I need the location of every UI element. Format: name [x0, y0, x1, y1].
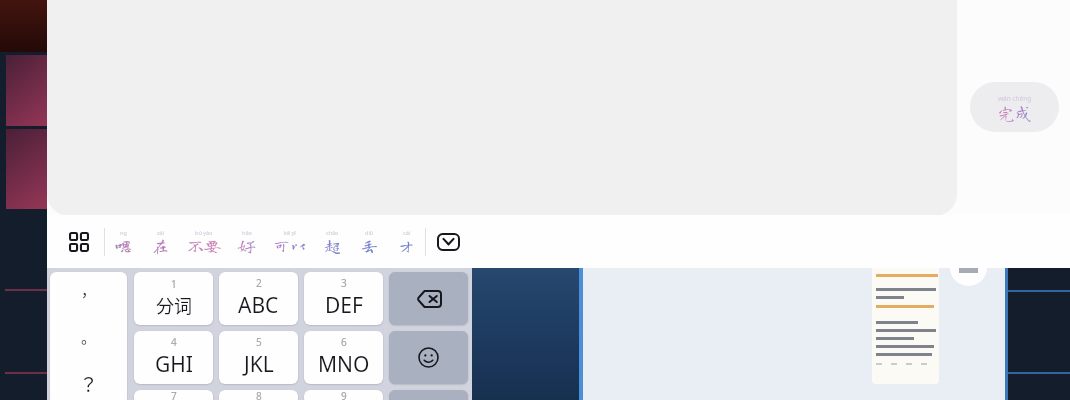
button[interactable]: Symbols	[389, 390, 468, 400]
staticText: cái	[403, 229, 411, 236]
button[interactable]: 3	[304, 272, 383, 325]
staticText: ABC	[238, 291, 279, 320]
staticText: wán chéng	[998, 94, 1032, 103]
button[interactable]: kě yǐ	[265, 215, 314, 268]
button[interactable]: ng	[105, 215, 142, 268]
staticText: 6	[341, 335, 347, 349]
staticText: GHI	[155, 350, 193, 379]
staticText: 8	[256, 390, 262, 400]
staticText: 。	[81, 326, 97, 348]
button[interactable]: 1	[134, 272, 213, 325]
staticText: 可以	[273, 237, 307, 254]
staticText: 丢	[361, 237, 378, 254]
staticText: 在	[152, 237, 169, 254]
staticText: 才	[398, 237, 415, 254]
button[interactable]: diū	[351, 215, 388, 268]
button[interactable]: 9	[304, 390, 383, 400]
staticText: 1	[171, 277, 177, 291]
button[interactable]: 8	[219, 390, 298, 400]
staticText: JKL	[244, 350, 274, 379]
staticText: 超	[324, 237, 341, 254]
staticText: kě yǐ	[284, 229, 296, 236]
button[interactable]: cái	[388, 215, 425, 268]
staticText: diū	[365, 229, 374, 236]
staticText: 4	[171, 335, 177, 349]
staticText: DEF	[325, 291, 363, 320]
staticText: ？	[79, 370, 99, 398]
button[interactable]: wán chéng	[970, 82, 1059, 132]
staticText: zài	[157, 229, 165, 236]
staticText: ，	[81, 279, 97, 301]
staticText: chāo	[326, 229, 339, 236]
button[interactable]: bú yào	[179, 215, 228, 268]
staticText: 嗯	[115, 237, 132, 254]
staticText: MNO	[318, 350, 370, 379]
button[interactable]: 4	[134, 331, 213, 384]
button[interactable]: zài	[142, 215, 179, 268]
button[interactable]: hǎo	[228, 215, 265, 268]
staticText: ng	[120, 229, 127, 236]
button[interactable]: 7	[134, 390, 213, 400]
button[interactable]: 2	[219, 272, 298, 325]
staticText: 不要	[187, 237, 221, 254]
staticText: 分词	[156, 292, 192, 318]
button[interactable]: Keyboard layouts	[61, 222, 97, 262]
staticText: 2	[256, 276, 262, 290]
button[interactable]: 5	[219, 331, 298, 384]
staticText: 完成	[998, 104, 1032, 121]
button[interactable]: Delete	[389, 272, 468, 325]
staticText: 5	[256, 335, 262, 349]
button[interactable]: 6	[304, 331, 383, 384]
button[interactable]: Hide keyboard	[433, 228, 463, 256]
staticText: hǎo	[242, 229, 252, 236]
staticText: 3	[341, 276, 347, 290]
staticText: 好	[238, 237, 255, 254]
button[interactable]: Emoji	[389, 331, 468, 384]
button[interactable]: ，	[50, 272, 127, 400]
staticText: 7	[171, 390, 177, 400]
button[interactable]: chāo	[314, 215, 351, 268]
staticText: 9	[341, 390, 347, 400]
staticText: bú yào	[195, 229, 213, 236]
